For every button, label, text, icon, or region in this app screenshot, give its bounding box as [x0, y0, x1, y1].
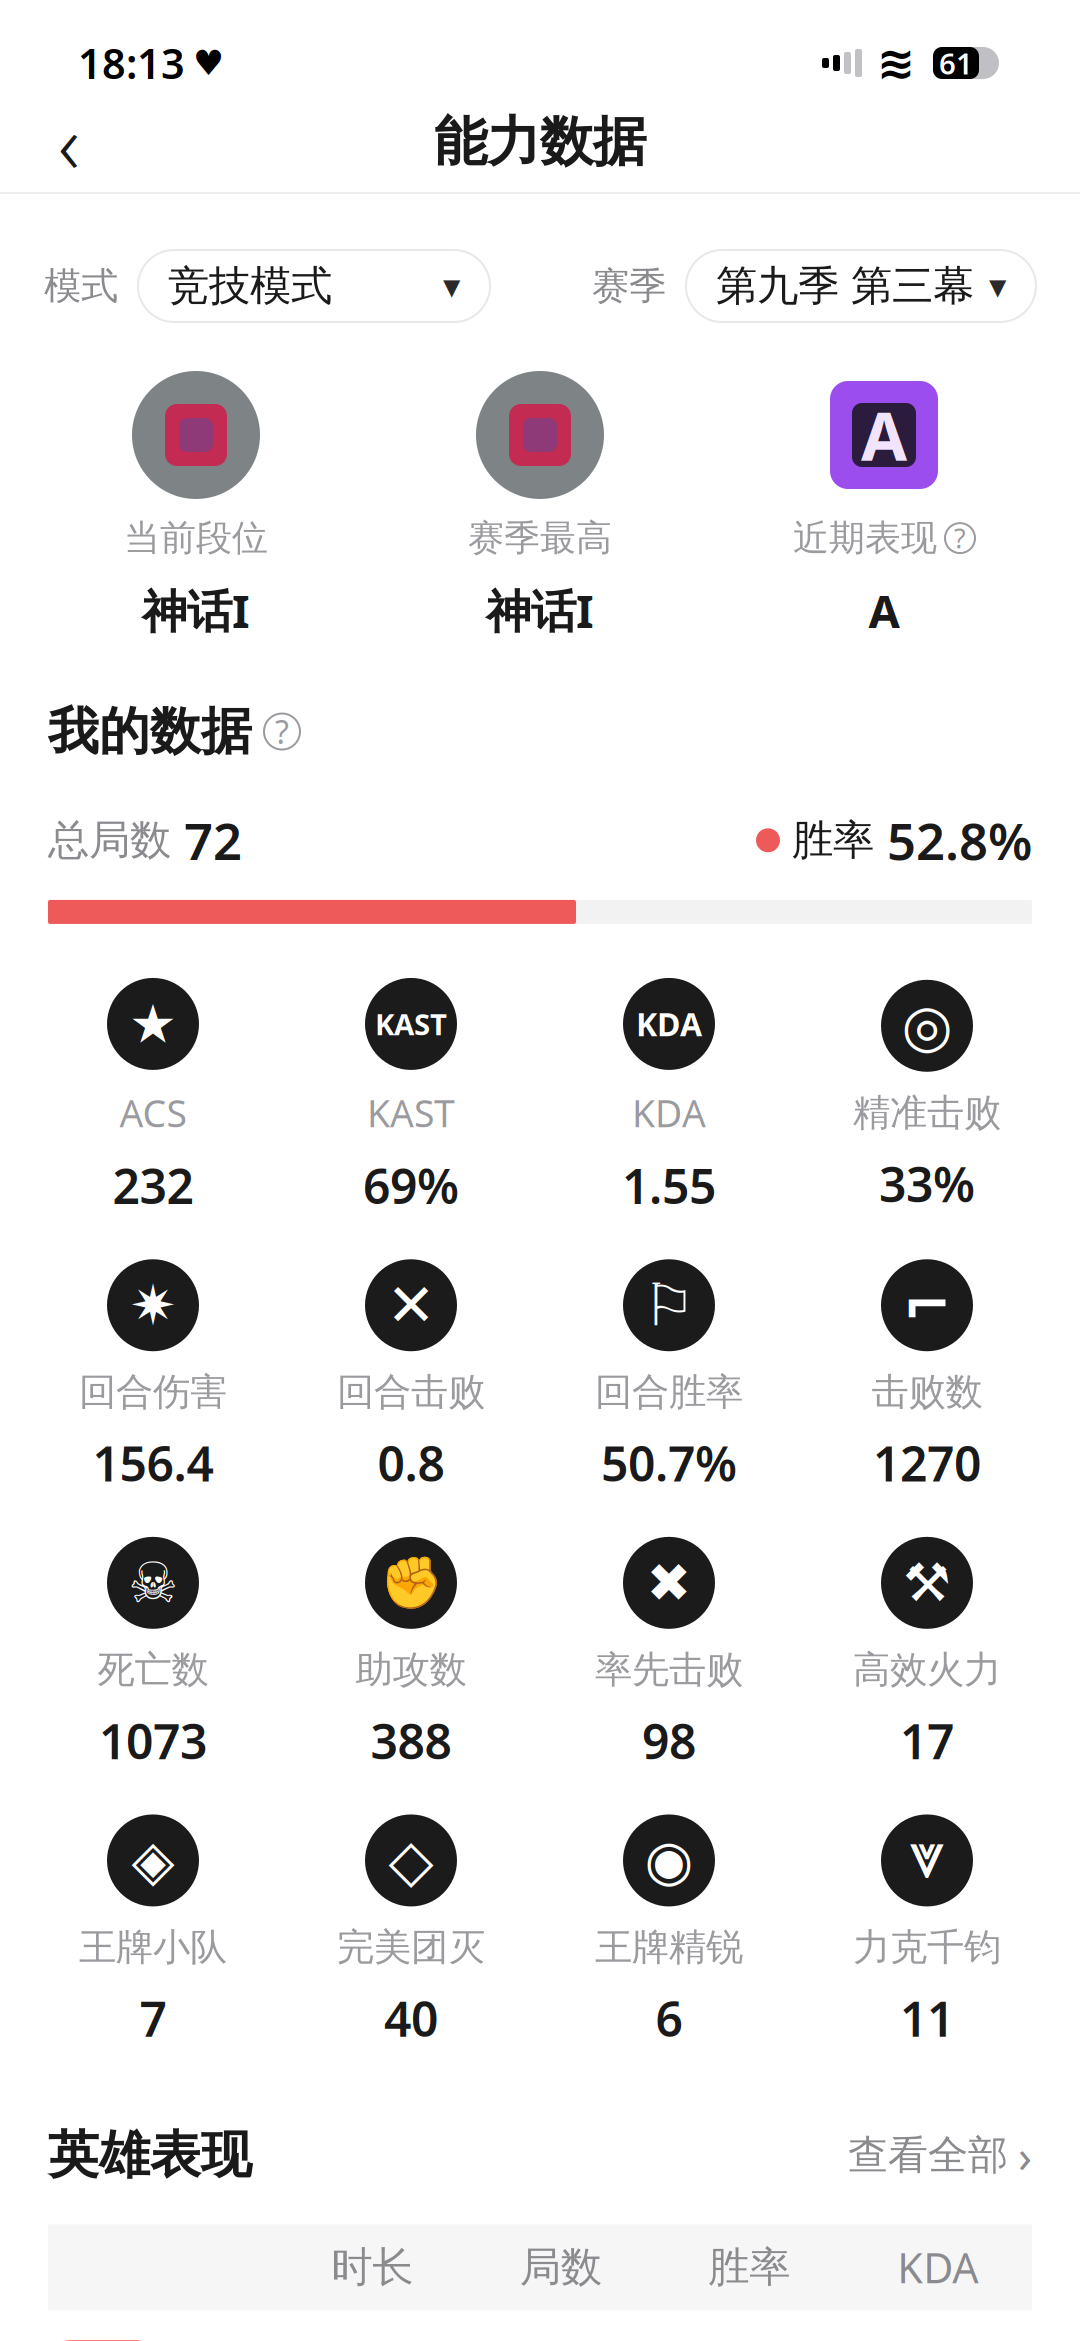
staticText: 时长	[331, 2242, 413, 2293]
staticText: 力克千钧	[853, 1924, 1001, 1970]
staticText: 50.7%	[601, 1431, 737, 1495]
button[interactable]: 竞技模式	[138, 250, 490, 322]
staticText: 能力数据	[434, 109, 646, 175]
staticText: 33%	[879, 1152, 975, 1215]
staticText: 1073	[99, 1709, 207, 1772]
staticText: 王牌小队	[79, 1924, 227, 1970]
staticText: 助攻数	[355, 1647, 466, 1693]
staticText: 1.55	[622, 1153, 716, 1217]
button[interactable]: 6.2h	[0, 2310, 1080, 2341]
staticText: ♥	[193, 43, 224, 83]
staticText: ◇	[388, 1827, 433, 1894]
staticText: 69%	[363, 1153, 459, 1217]
staticText: 388	[370, 1709, 451, 1772]
staticText: KAST	[375, 1004, 447, 1043]
staticText: ?	[275, 710, 289, 753]
staticText: KDA	[897, 2240, 978, 2295]
staticText: 98	[642, 1709, 696, 1772]
staticText: ◈	[131, 1829, 174, 1892]
staticText: 第九季 第三幕	[716, 261, 974, 311]
staticText: ✕	[386, 1272, 435, 1339]
staticText: 高效火力	[853, 1647, 1001, 1693]
staticText: 0.8	[377, 1431, 444, 1495]
staticText: KDA	[636, 1003, 702, 1045]
staticText: 52.8%	[874, 807, 1032, 874]
staticText: 40	[384, 1986, 438, 2050]
staticText: 1270	[873, 1431, 981, 1495]
staticText: 神话I	[486, 580, 594, 640]
staticText: 当前段位	[124, 516, 268, 560]
staticText: 我的数据	[48, 700, 252, 763]
staticText: 神话I	[142, 580, 250, 640]
staticText: ★	[129, 994, 177, 1054]
staticText: 6	[655, 1986, 682, 2050]
staticText: ◎	[901, 992, 952, 1059]
staticText: KAST	[367, 1088, 455, 1137]
staticText: ≋	[877, 37, 915, 89]
staticText: ☠	[128, 1551, 178, 1615]
staticText: 赛季最高	[468, 516, 612, 560]
staticText: ⩔	[906, 1832, 947, 1889]
button[interactable]: 第九季 第三幕	[686, 250, 1036, 322]
staticText: 赛季	[592, 263, 666, 309]
staticText: ?	[954, 520, 966, 556]
staticText: 胜率	[708, 2242, 790, 2293]
staticText: 竞技模式	[168, 261, 332, 311]
staticText: 17	[900, 1709, 954, 1772]
staticText: 回合胜率	[595, 1369, 743, 1415]
staticText: 回合击败	[337, 1369, 485, 1415]
staticText: 232	[112, 1153, 193, 1217]
staticText: 总局数	[48, 815, 171, 866]
staticText: ✷	[129, 1273, 176, 1337]
staticText: 英雄表现	[48, 2124, 252, 2186]
staticText: 回合伤害	[79, 1369, 227, 1415]
staticText: 72	[171, 807, 242, 874]
staticText: 156.4	[92, 1431, 213, 1495]
staticText: ✖	[646, 1553, 691, 1613]
staticText: KDA	[632, 1088, 706, 1137]
staticText: ▾	[443, 266, 460, 306]
staticText: ⚒	[903, 1553, 951, 1613]
staticText: ◉	[644, 1829, 693, 1892]
staticText: 胜率	[780, 815, 874, 866]
staticText: 近期表现	[793, 516, 937, 560]
staticText: ‹	[58, 87, 80, 197]
button[interactable]: Back	[24, 97, 114, 187]
staticText: ⚐	[642, 1272, 695, 1339]
staticText: 局数	[520, 2242, 602, 2293]
staticText: 死亡数	[97, 1647, 208, 1693]
button[interactable]: 查看全部	[848, 2125, 1032, 2185]
staticText: ⌐	[902, 1272, 951, 1339]
staticText: ›	[1018, 2125, 1032, 2185]
staticText: 精准击败	[853, 1090, 1001, 1136]
staticText: 11	[900, 1986, 954, 2050]
staticText: ▾	[989, 266, 1006, 306]
staticText: 7	[139, 1986, 166, 2050]
staticText: 模式	[44, 263, 118, 309]
staticText: 完美团灭	[337, 1924, 485, 1970]
staticText: ACS	[119, 1088, 186, 1137]
staticText: 61	[939, 43, 973, 82]
staticText: 18:13	[78, 36, 185, 90]
staticText: ✊	[379, 1554, 442, 1612]
staticText: 击败数	[871, 1369, 982, 1415]
staticText: A	[868, 580, 899, 640]
staticText: A	[861, 391, 907, 479]
staticText: 率先击败	[595, 1647, 743, 1693]
staticText: 查看全部	[848, 2131, 1008, 2180]
staticText: 王牌精锐	[595, 1924, 743, 1970]
button[interactable]: About my data	[264, 713, 300, 749]
